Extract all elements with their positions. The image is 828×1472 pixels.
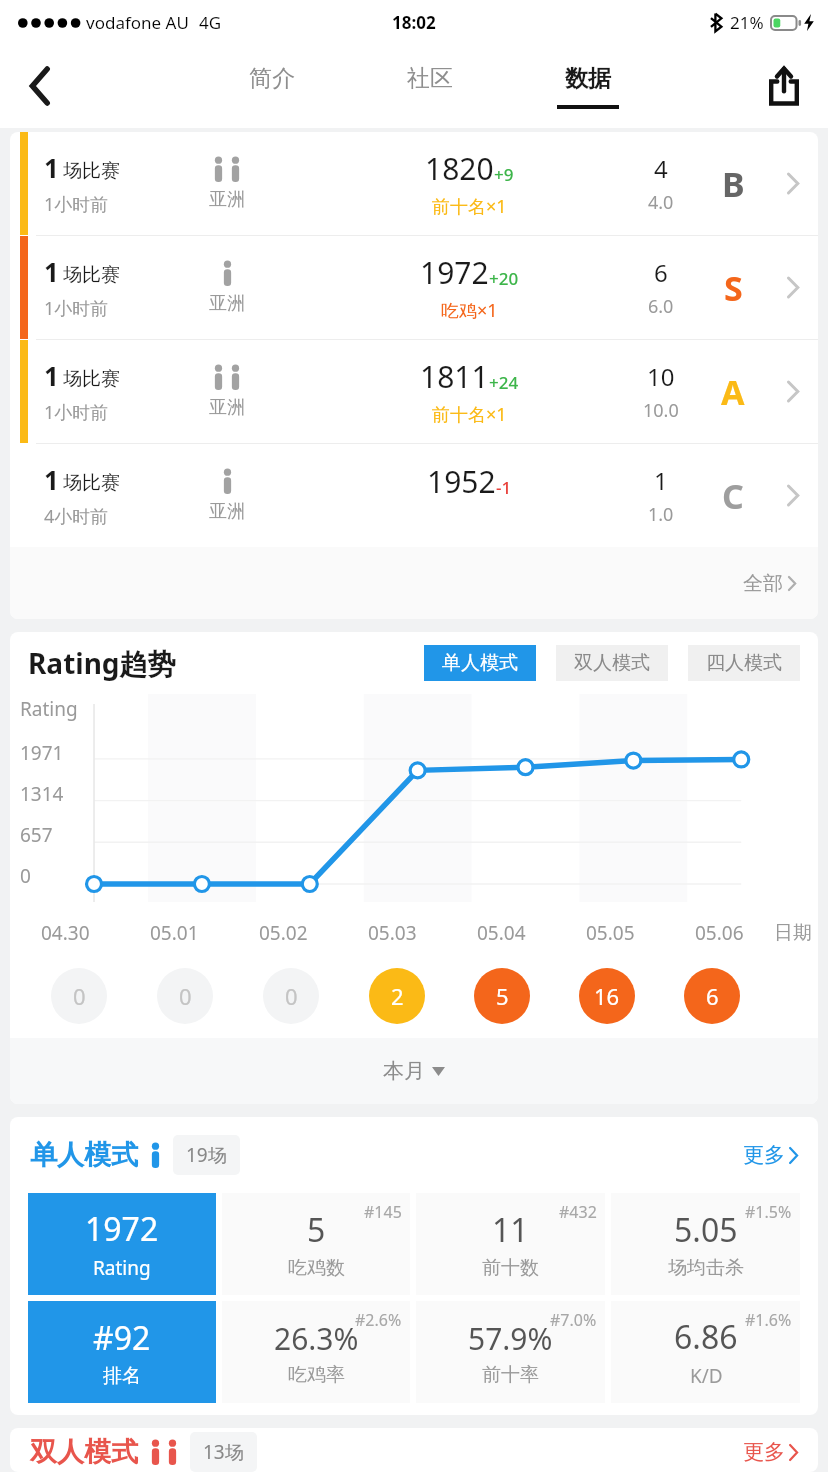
button[interactable]: 5 <box>474 968 530 1024</box>
staticText: 简介 <box>249 64 295 93</box>
button[interactable]: 本月 <box>10 1038 818 1104</box>
staticText: 亚洲 <box>209 396 245 419</box>
button[interactable]: #145 <box>222 1193 410 1295</box>
staticText: 1314 <box>20 781 64 807</box>
button[interactable]: #7.0% <box>416 1301 605 1403</box>
button[interactable]: 2 <box>369 968 425 1024</box>
staticText: 1.0 <box>648 502 674 527</box>
staticText: -1 <box>496 476 512 499</box>
staticText: 1 <box>654 464 668 497</box>
button[interactable]: #1.5% <box>611 1193 800 1295</box>
button[interactable]: #2.6% <box>222 1301 410 1403</box>
staticText: Rating <box>20 696 78 722</box>
staticText: 场均击杀 <box>668 1256 744 1280</box>
staticText: 1小时前 <box>44 400 109 425</box>
staticText: 0 <box>73 981 86 1011</box>
button[interactable]: 简介 <box>229 64 315 109</box>
staticText: A <box>721 369 745 415</box>
staticText: 16 <box>594 981 620 1011</box>
button[interactable]: 1 <box>10 444 818 547</box>
staticText: 18:02 <box>392 11 436 34</box>
staticText: vodafone AU <box>86 11 189 34</box>
button[interactable]: 1 <box>10 236 818 339</box>
staticText: 13场 <box>203 1439 244 1465</box>
button[interactable]: 0 <box>51 968 107 1024</box>
staticText: 更多 <box>743 1439 785 1465</box>
button[interactable]: 16 <box>579 968 635 1024</box>
staticText: 4.0 <box>648 190 674 215</box>
button[interactable]: 全部 <box>10 547 818 619</box>
staticText: 5 <box>496 981 509 1011</box>
staticText: 57.9% <box>468 1318 553 1359</box>
staticText: +24 <box>489 371 519 394</box>
staticText: 四人模式 <box>706 651 782 675</box>
staticText: Rating趋势 <box>28 644 176 682</box>
button[interactable]: 数据 <box>545 64 631 109</box>
staticText: 全部 <box>743 571 783 596</box>
staticText: 04.30 <box>41 920 90 946</box>
button[interactable]: 社区 <box>387 64 473 109</box>
button[interactable]: #1.6% <box>611 1301 800 1403</box>
button[interactable]: 更多 <box>743 1439 798 1465</box>
staticText: 1811 <box>420 356 489 397</box>
staticText: 排名 <box>103 1364 141 1388</box>
staticText: 1972 <box>420 252 489 293</box>
staticText: #2.6% <box>355 1309 402 1331</box>
staticText: 双人模式 <box>574 651 650 675</box>
staticText: 19场 <box>186 1142 227 1168</box>
staticText: 场比赛 <box>63 471 120 495</box>
staticText: 场比赛 <box>63 263 120 287</box>
button[interactable]: Back <box>10 56 70 116</box>
button[interactable]: 1972 <box>28 1193 216 1295</box>
staticText: 05.06 <box>695 920 744 946</box>
staticText: +20 <box>489 267 519 290</box>
staticText: 0 <box>179 981 192 1011</box>
button[interactable]: 6 <box>684 968 740 1024</box>
staticText: 4小时前 <box>44 504 109 529</box>
staticText: #1.5% <box>745 1201 792 1223</box>
staticText: +9 <box>494 163 514 186</box>
button[interactable]: Share <box>754 56 814 116</box>
staticText: 1 <box>44 254 59 289</box>
button[interactable]: 四人模式 <box>688 645 800 681</box>
staticText: 场比赛 <box>63 159 120 183</box>
staticText: 亚洲 <box>209 292 245 315</box>
button[interactable]: 更多 <box>743 1142 798 1168</box>
staticText: 前十率 <box>482 1363 539 1387</box>
staticText: 1820 <box>425 148 494 189</box>
staticText: 05.01 <box>150 920 199 946</box>
staticText: 1小时前 <box>44 296 109 321</box>
staticText: 5.05 <box>674 1208 738 1252</box>
staticText: 吃鸡数 <box>288 1256 345 1280</box>
button[interactable]: 1 <box>10 340 818 443</box>
button[interactable]: 双人模式 <box>556 645 668 681</box>
staticText: 单人模式 <box>30 1138 138 1172</box>
button[interactable]: 单人模式 <box>424 645 536 681</box>
staticText: 单人模式 <box>442 651 518 675</box>
staticText: S <box>724 265 743 311</box>
staticText: 05.03 <box>368 920 417 946</box>
staticText: 前十名×1 <box>432 402 507 427</box>
staticText: 1952 <box>427 461 496 502</box>
staticText: 本月 <box>383 1058 425 1084</box>
staticText: #145 <box>364 1201 402 1223</box>
button[interactable]: 1 <box>10 132 818 235</box>
staticText: 社区 <box>407 64 453 93</box>
staticText: 1972 <box>85 1207 159 1251</box>
staticText: 26.3% <box>274 1318 359 1359</box>
staticText: 1 <box>44 462 59 497</box>
button[interactable]: 0 <box>263 968 319 1024</box>
staticText: Rating <box>93 1255 151 1281</box>
staticText: 1小时前 <box>44 192 109 217</box>
staticText: 657 <box>20 822 53 848</box>
button[interactable]: #92 <box>28 1301 216 1403</box>
button[interactable]: 0 <box>157 968 213 1024</box>
staticText: 1 <box>44 150 59 185</box>
staticText: 亚洲 <box>209 500 245 523</box>
staticText: 21% <box>730 11 764 34</box>
button[interactable]: #432 <box>416 1193 605 1295</box>
staticText: 5 <box>307 1208 326 1252</box>
staticText: 4G <box>199 11 222 34</box>
staticText: 亚洲 <box>209 188 245 211</box>
staticText: 双人模式 <box>30 1435 138 1469</box>
